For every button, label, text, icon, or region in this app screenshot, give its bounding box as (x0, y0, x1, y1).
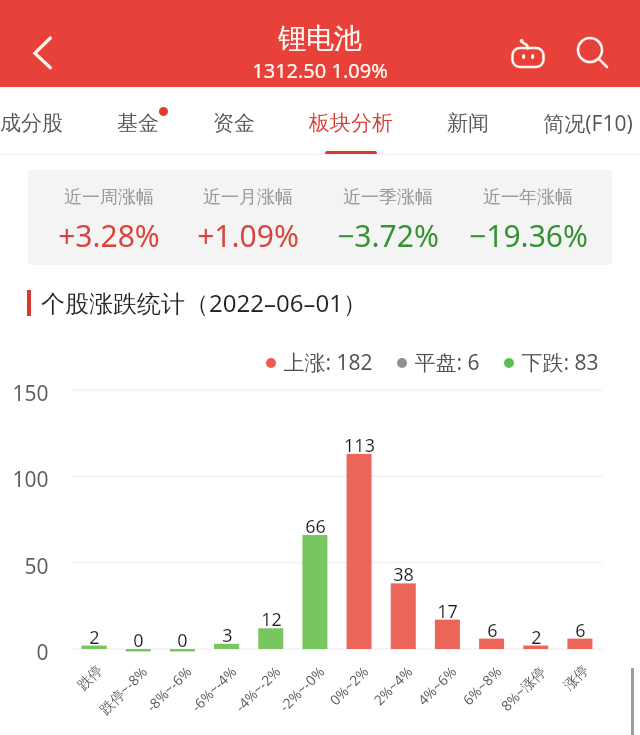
staticText: 50 (24, 552, 49, 581)
button[interactable]: 基金 (90, 87, 186, 155)
staticText: 近一年涨幅 (483, 186, 573, 209)
staticText: 跌停 (74, 662, 107, 694)
staticText: 锂电池 (278, 21, 362, 56)
button[interactable]: AI assistant (500, 29, 556, 75)
staticText: 0%~2% (325, 662, 372, 709)
staticText: 下跌: 83 (521, 348, 599, 377)
staticText: 上涨: 182 (283, 348, 373, 377)
staticText: 4%~6% (413, 662, 460, 709)
staticText: 2 (531, 625, 542, 650)
staticText: 板块分析 (309, 110, 393, 136)
staticText: -4%~-2% (231, 662, 284, 716)
staticText: 基金 (117, 110, 159, 136)
staticText: +1.09% (197, 215, 299, 256)
staticText: 近一季涨幅 (343, 186, 433, 209)
staticText: 新闻 (447, 110, 489, 136)
staticText: 6 (575, 618, 586, 643)
staticText: 1312.50 1.09% (252, 57, 388, 84)
staticText: -2%~-0% (275, 662, 328, 716)
button[interactable]: 新闻 (420, 87, 516, 155)
staticText: 0 (36, 638, 49, 667)
staticText: 资金 (213, 110, 255, 136)
staticText: 100 (12, 465, 49, 494)
staticText: 113 (344, 433, 375, 458)
staticText: 6 (487, 618, 498, 643)
staticText: 近一周涨幅 (64, 186, 154, 209)
staticText: 6%~8% (458, 662, 505, 709)
staticText: 涨停 (560, 662, 593, 694)
button[interactable]: Back (8, 16, 64, 72)
staticText: 0 (133, 628, 144, 653)
staticText: 近一月涨幅 (203, 186, 293, 209)
button[interactable]: 板块分析 (282, 87, 420, 155)
staticText: 2%~4% (369, 662, 416, 709)
staticText: 2 (89, 625, 100, 650)
button[interactable]: 资金 (186, 87, 282, 155)
staticText: 17 (437, 599, 458, 624)
staticText: 简况(F10) (543, 109, 633, 138)
staticText: 跌停~-8% (95, 662, 151, 719)
button[interactable]: Search (562, 22, 618, 78)
staticText: −19.36% (469, 215, 588, 256)
staticText: +3.28% (58, 215, 160, 256)
staticText: 3 (222, 623, 233, 648)
staticText: 0 (177, 628, 188, 653)
button[interactable]: 简况(F10) (516, 87, 640, 155)
staticText: -8%~-6% (142, 662, 195, 716)
staticText: 个股涨跌统计（2022–06–01） (41, 286, 367, 319)
staticText: −3.72% (337, 215, 439, 256)
staticText: 66 (305, 514, 326, 539)
staticText: 8%~涨停 (496, 662, 549, 715)
button[interactable]: 成分股 (0, 87, 90, 155)
staticText: 38 (393, 562, 414, 587)
staticText: -6%~-4% (187, 662, 240, 716)
staticText: 12 (261, 607, 282, 632)
staticText: 150 (12, 379, 49, 408)
staticText: 平盘: 6 (414, 348, 480, 377)
staticText: 成分股 (0, 110, 63, 136)
